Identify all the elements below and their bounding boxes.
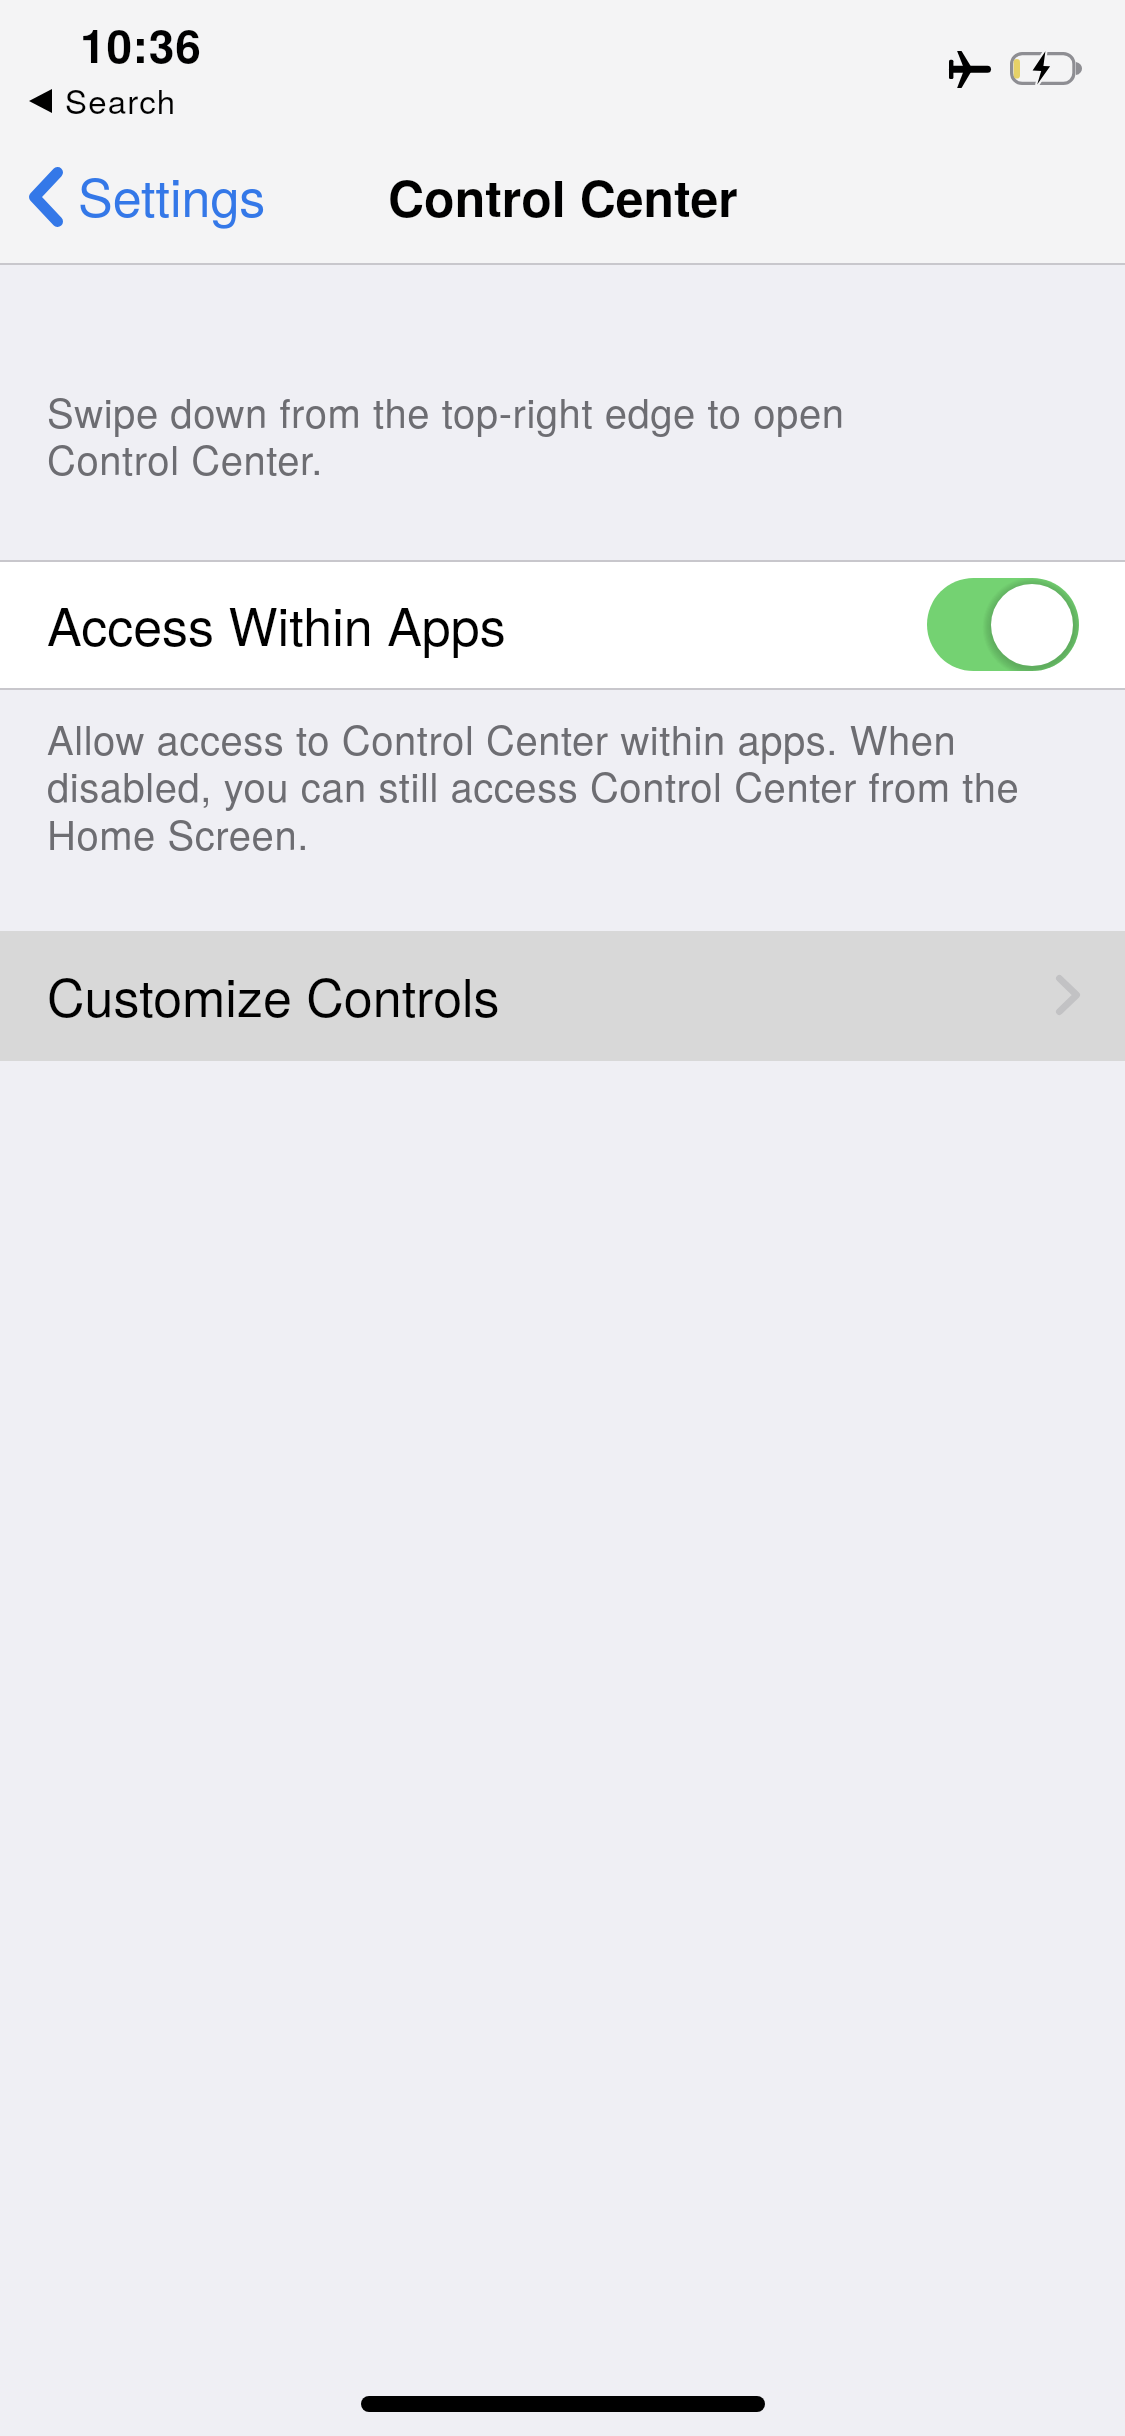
staticText: Swipe down from the top-right edge to op… <box>47 382 937 487</box>
button[interactable]: Customize Controls <box>0 931 1125 1061</box>
button[interactable]: Access Within Apps <box>0 560 1125 690</box>
button[interactable]: Settings <box>14 152 282 252</box>
staticText: Access Within Apps <box>47 586 506 660</box>
staticText: Control Center <box>388 161 738 233</box>
button[interactable]: Access Within Apps <box>927 578 1079 671</box>
button[interactable]: Search <box>20 74 190 126</box>
other: Airplane mode on <box>949 51 991 88</box>
staticText: Settings <box>78 157 266 231</box>
other: Battery charging <box>1010 52 1084 85</box>
staticText: Search <box>65 76 177 123</box>
staticText: Customize Controls <box>47 957 500 1031</box>
staticText: 10:36 <box>80 11 202 77</box>
staticText: Allow access to Control Center within ap… <box>47 709 1062 862</box>
